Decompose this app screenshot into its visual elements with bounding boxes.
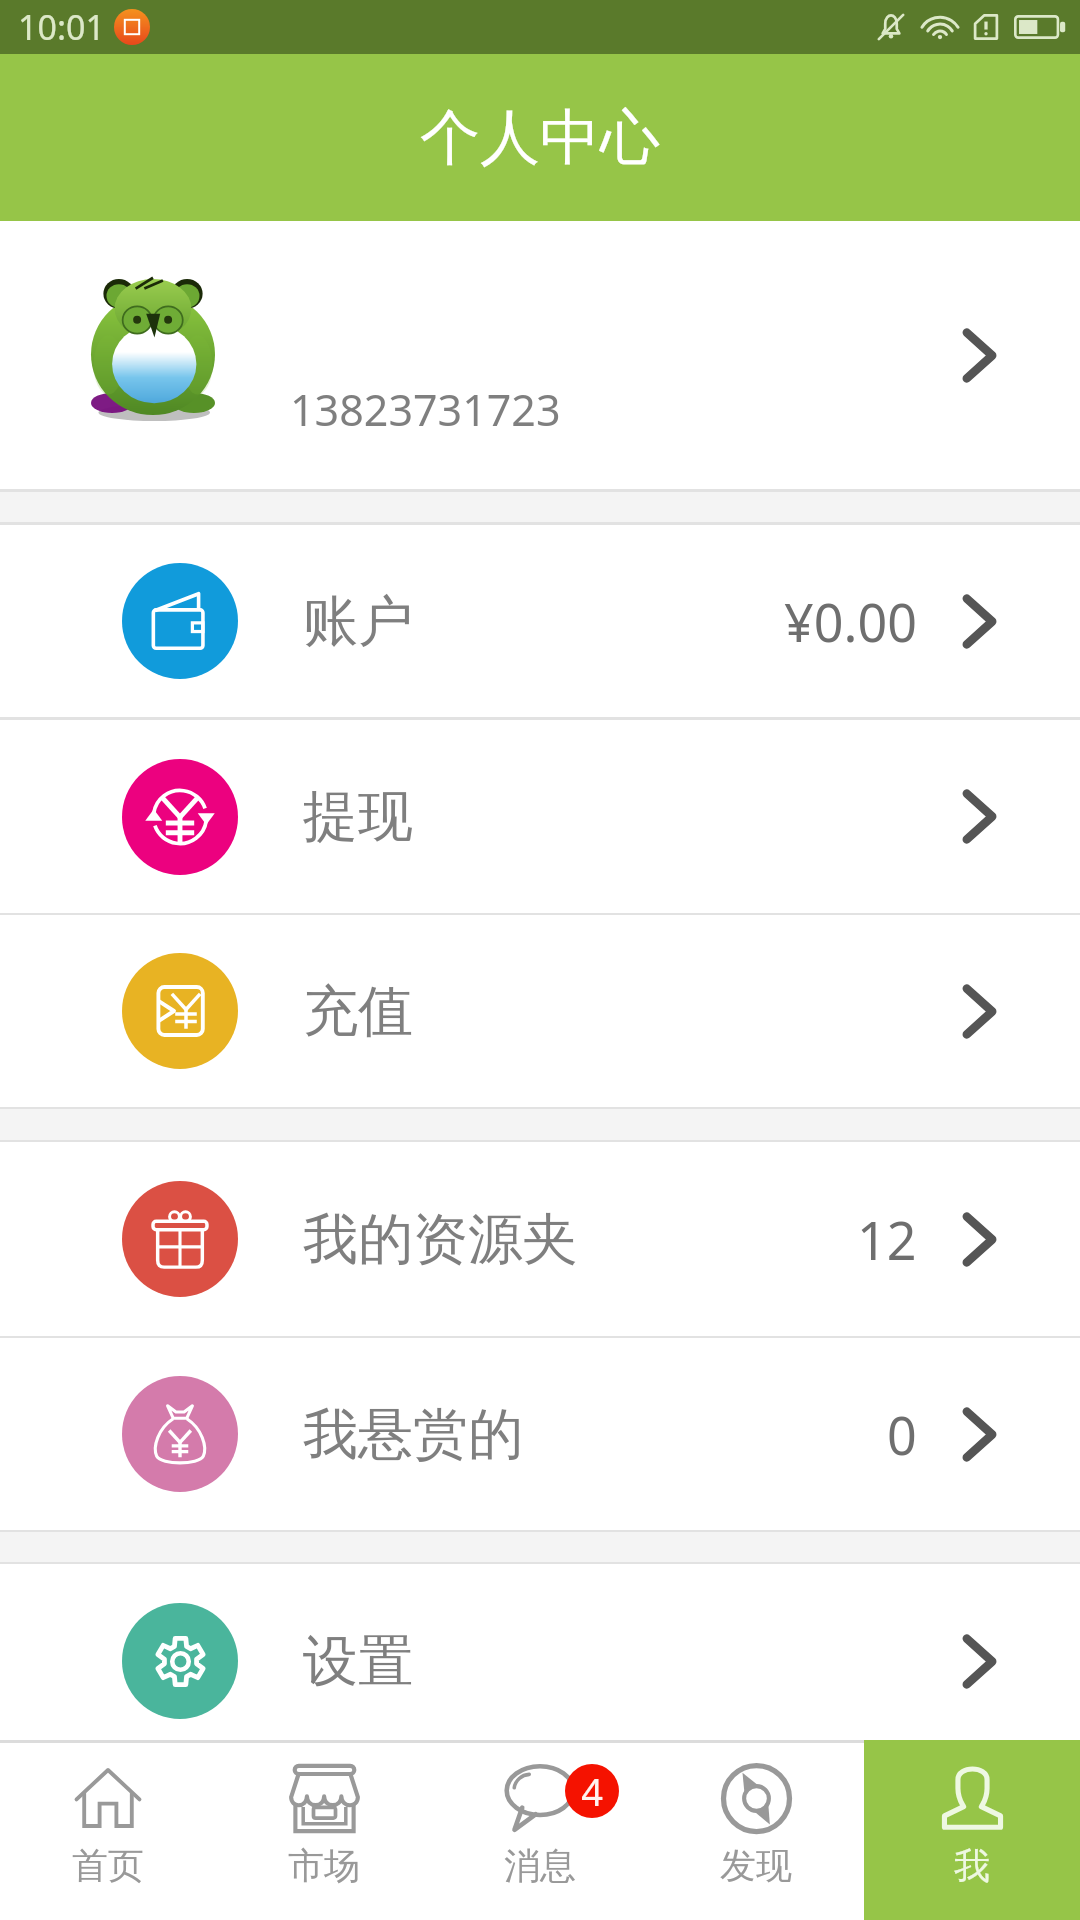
staticText: 首页 xyxy=(72,1843,144,1888)
button[interactable]: 市场 xyxy=(216,1743,432,1920)
staticText: 消息 xyxy=(504,1843,576,1888)
button[interactable]: 4 xyxy=(432,1743,648,1920)
button[interactable]: 13823731723 xyxy=(0,221,1080,489)
button[interactable]: 发现 xyxy=(648,1743,864,1920)
staticText: 设置 xyxy=(303,1627,413,1696)
button[interactable]: Account xyxy=(0,525,1080,717)
button[interactable]: My resources xyxy=(0,1142,1080,1336)
staticText: 13823731723 xyxy=(290,380,561,439)
staticText: 10:01 xyxy=(18,4,105,50)
button[interactable]: 我 xyxy=(864,1743,1080,1920)
staticText: 0 xyxy=(887,1399,917,1470)
staticText: 市场 xyxy=(288,1843,360,1888)
staticText: ¥0.00 xyxy=(784,586,917,657)
button[interactable]: Recharge xyxy=(0,915,1080,1107)
button[interactable]: Withdraw xyxy=(0,720,1080,913)
button[interactable]: My bounties xyxy=(0,1338,1080,1530)
staticText: 个人中心 xyxy=(420,100,660,176)
staticText: 12 xyxy=(857,1204,917,1275)
staticText: 4 xyxy=(581,1765,603,1817)
staticText: 我的资源夹 xyxy=(303,1205,578,1274)
staticText: 充值 xyxy=(303,977,413,1046)
staticText: 我悬赏的 xyxy=(303,1400,523,1469)
staticText: 发现 xyxy=(720,1843,792,1888)
staticText: 我 xyxy=(954,1843,990,1888)
button[interactable]: Settings xyxy=(0,1564,1080,1758)
staticText: 提现 xyxy=(303,782,413,851)
button[interactable]: 首页 xyxy=(0,1743,216,1920)
staticText: 账户 xyxy=(303,587,413,656)
